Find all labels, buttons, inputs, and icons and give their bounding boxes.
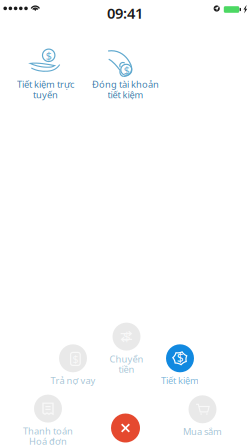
button[interactable]: $ (4, 42, 87, 108)
staticText: tiết kiệm (107, 88, 143, 101)
staticText: tuyến (33, 88, 58, 101)
staticText: Mua sắm (183, 425, 222, 438)
button[interactable]: $ (161, 344, 199, 387)
button[interactable]: Close menu (111, 413, 140, 442)
staticText: tiền (118, 363, 134, 375)
button[interactable]: $ (84, 42, 167, 108)
staticText: $ (72, 352, 78, 366)
staticText: $ (46, 48, 52, 63)
staticText: 09:41 (107, 3, 143, 23)
staticText: Tiết kiệm (161, 374, 199, 387)
button[interactable]: Thanh toán (23, 395, 73, 446)
button[interactable]: $ (50, 344, 95, 387)
staticText: $ (123, 328, 131, 345)
staticText: $ (177, 350, 184, 366)
staticText: Tiết kiệm trực (17, 78, 74, 90)
staticText: Đóng tài khoản (92, 78, 159, 90)
button[interactable]: Mua sắm (183, 395, 222, 438)
staticText: Thanh toán (23, 425, 73, 437)
button[interactable]: $ (109, 323, 143, 375)
staticText: $ (124, 63, 130, 77)
staticText: Chuyển (109, 353, 143, 365)
staticText: Trả nợ vay (50, 374, 95, 387)
staticText: Hoá đơn (29, 435, 67, 446)
